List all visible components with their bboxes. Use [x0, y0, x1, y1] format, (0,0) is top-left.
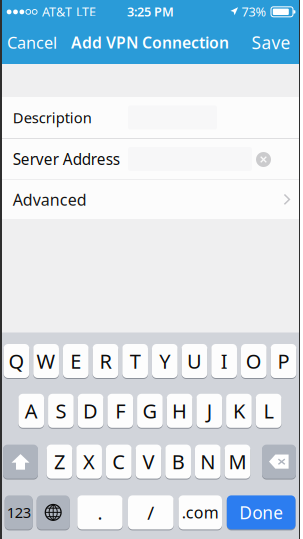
staticText: Server Address	[13, 149, 120, 169]
button[interactable]: Save	[243, 27, 295, 58]
button[interactable]: Done	[227, 495, 295, 529]
button[interactable]: Z	[47, 445, 72, 479]
button[interactable]: M	[225, 445, 250, 479]
button[interactable]: .	[77, 495, 123, 529]
button[interactable]: /	[128, 495, 174, 529]
staticText: J	[207, 397, 212, 424]
staticText: .com	[182, 501, 219, 523]
staticText: R	[99, 347, 111, 375]
button[interactable]: X	[76, 445, 102, 479]
staticText: Cancel	[7, 31, 57, 54]
button[interactable]: W	[33, 344, 59, 378]
staticText: Q	[8, 347, 24, 375]
staticText: F	[115, 397, 125, 424]
button[interactable]: K	[226, 394, 252, 428]
staticText: E	[70, 347, 81, 375]
button[interactable]: B	[165, 445, 191, 479]
staticText: C	[112, 448, 125, 475]
staticText: H	[172, 397, 187, 424]
staticText: V	[142, 448, 154, 475]
staticText: AT&T	[42, 3, 72, 20]
staticText: S	[55, 397, 66, 424]
button[interactable]: E	[63, 344, 89, 378]
staticText: Z	[54, 448, 65, 475]
staticText: Y	[159, 347, 170, 375]
staticText: W	[37, 347, 56, 375]
button[interactable]: .com	[178, 495, 222, 529]
staticText: Done	[239, 501, 283, 524]
button[interactable]: Delete	[0, 0, 34, 34]
button[interactable]: T	[122, 344, 148, 378]
button[interactable]: G	[137, 394, 163, 428]
button[interactable]: F	[107, 394, 133, 428]
button[interactable]: Cancel	[3, 27, 59, 58]
button[interactable]: Q	[4, 344, 29, 378]
staticText: 123	[7, 502, 31, 522]
staticText: /	[147, 500, 154, 525]
staticText: U	[187, 347, 202, 375]
button[interactable]: R	[93, 344, 118, 378]
staticText: 3:25 PM	[127, 3, 174, 20]
button[interactable]: P	[271, 344, 296, 378]
button[interactable]: J	[196, 394, 222, 428]
button[interactable]: Shift	[0, 0, 35, 34]
button[interactable]: C	[106, 445, 132, 479]
staticText: N	[200, 448, 215, 475]
button[interactable]: Advanced	[2, 180, 299, 219]
button[interactable]: U	[182, 344, 207, 378]
button[interactable]: V	[136, 445, 161, 479]
button[interactable]: L	[256, 394, 281, 428]
button[interactable]: Next keyboard	[0, 0, 33, 34]
button[interactable]: D	[78, 394, 103, 428]
staticText: K	[233, 397, 245, 424]
button[interactable]: Clear text	[256, 152, 271, 167]
staticText: L	[264, 397, 274, 424]
staticText: G	[142, 397, 157, 424]
staticText: M	[228, 448, 246, 475]
staticText: .	[97, 500, 102, 525]
staticText: Advanced	[13, 189, 87, 210]
staticText: 73%	[241, 3, 266, 20]
button[interactable]: O	[241, 344, 267, 378]
staticText: O	[246, 347, 262, 375]
staticText: LTE	[76, 3, 96, 20]
staticText: A	[25, 397, 38, 424]
button[interactable]: I	[211, 344, 237, 378]
staticText: I	[221, 347, 228, 375]
staticText: X	[83, 448, 95, 475]
staticText: Description	[13, 107, 92, 127]
staticText: B	[172, 448, 185, 475]
button[interactable]: Y	[152, 344, 178, 378]
staticText: Save	[251, 31, 290, 54]
button[interactable]: A	[18, 394, 44, 428]
staticText: T	[130, 347, 141, 375]
button[interactable]: 123	[5, 495, 33, 529]
button[interactable]: N	[195, 445, 221, 479]
staticText: Add VPN Connection	[71, 32, 229, 53]
button[interactable]: S	[48, 394, 74, 428]
staticText: P	[277, 347, 289, 375]
staticText: D	[83, 397, 98, 424]
button[interactable]: H	[167, 394, 192, 428]
